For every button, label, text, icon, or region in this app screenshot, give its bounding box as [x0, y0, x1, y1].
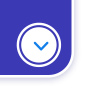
- button[interactable]: Expand: [17, 23, 61, 67]
